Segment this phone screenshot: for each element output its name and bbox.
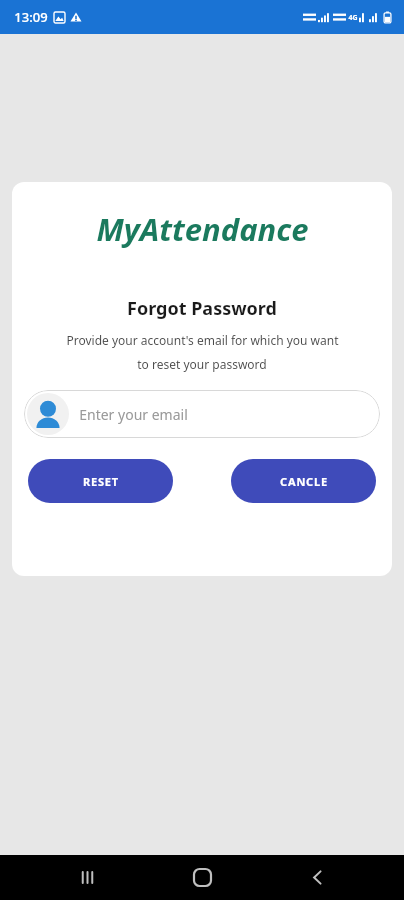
staticText: Provide your account's email for which y… [66,332,339,348]
button[interactable]: Back [289,855,345,900]
button[interactable]: Home [174,855,230,900]
button[interactable]: Recent apps [59,855,115,900]
staticText: RESET [83,474,119,489]
staticText: CANCLE [280,474,328,489]
button[interactable]: RESET [28,459,173,503]
staticText: to reset your password [137,356,267,372]
button[interactable]: Enter your email [24,390,380,438]
staticText: MyAttendance [96,208,309,250]
staticText: Forgot Password [127,296,277,321]
staticText: Enter your email [79,405,188,424]
button[interactable]: CANCLE [231,459,376,503]
staticText: 4G [348,13,358,23]
staticText: 13:09 [14,8,48,26]
